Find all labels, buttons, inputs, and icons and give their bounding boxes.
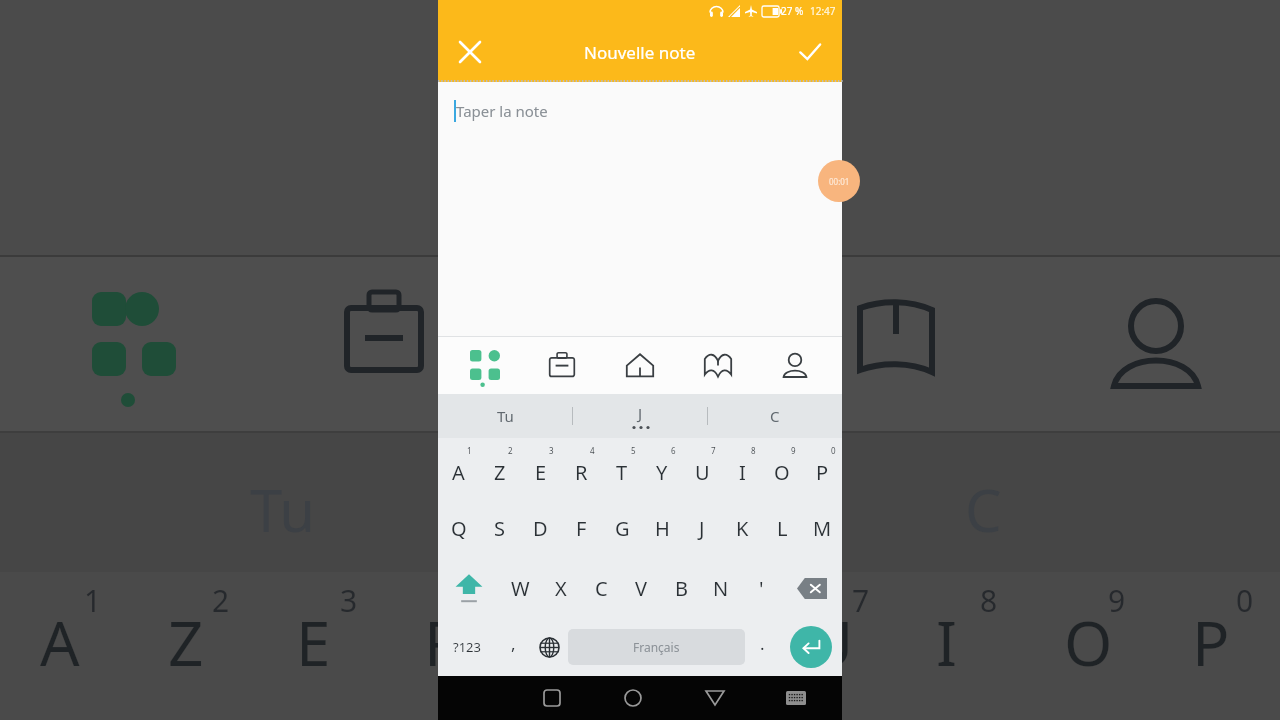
staticText: L — [777, 515, 788, 542]
button[interactable]: Work — [531, 336, 593, 394]
staticText: 8 — [980, 580, 998, 621]
button[interactable]: J — [572, 394, 707, 438]
button[interactable]: K — [722, 498, 762, 558]
button[interactable]: Français — [568, 629, 745, 665]
staticText: I — [739, 459, 746, 486]
button[interactable]: Library — [687, 336, 749, 394]
staticText: ?123 — [453, 638, 481, 656]
button[interactable]: L — [762, 498, 802, 558]
button[interactable]: 0 — [802, 438, 842, 498]
staticText: V — [635, 575, 647, 602]
staticText: O — [1064, 600, 1113, 684]
button[interactable]: X — [541, 558, 581, 618]
staticText: 5 — [596, 580, 614, 621]
staticText: Taper la note — [456, 101, 548, 121]
button[interactable]: Enter — [790, 626, 832, 668]
button[interactable]: 5 — [602, 438, 642, 498]
staticText: 00:01 — [829, 176, 850, 187]
staticText: 1 — [467, 445, 472, 456]
staticText: Q — [451, 515, 467, 542]
staticText: H — [655, 515, 670, 542]
button[interactable]: , — [496, 618, 530, 676]
staticText: C — [965, 470, 1002, 549]
button[interactable]: Home — [613, 678, 653, 718]
button[interactable]: Back — [695, 678, 735, 718]
staticText: F — [576, 515, 587, 542]
staticText: T — [616, 459, 628, 486]
staticText: P — [816, 459, 829, 486]
button[interactable]: 3 — [520, 438, 561, 498]
staticText: E — [296, 600, 331, 684]
button[interactable]: G — [602, 498, 642, 558]
staticText: G — [615, 515, 630, 542]
staticText: O — [774, 459, 790, 486]
button[interactable]: V — [621, 558, 661, 618]
staticText: 9 — [1108, 580, 1126, 621]
staticText: P — [1192, 600, 1230, 684]
staticText: 4 — [468, 580, 486, 621]
button[interactable]: Profile — [764, 336, 826, 394]
button[interactable]: Shift — [438, 558, 500, 618]
staticText: 27 % — [781, 4, 804, 18]
button[interactable]: ?123 — [438, 618, 496, 676]
staticText: C — [770, 406, 780, 426]
button[interactable]: 7 — [682, 438, 722, 498]
staticText: I — [936, 600, 958, 684]
button[interactable]: 8 — [722, 438, 762, 498]
staticText: T — [552, 600, 587, 684]
button[interactable]: 6 — [642, 438, 682, 498]
staticText: J — [638, 403, 643, 423]
staticText: 9 — [791, 445, 796, 456]
staticText: Z — [494, 459, 506, 486]
button[interactable]: Home — [609, 336, 671, 394]
staticText: X — [555, 575, 567, 602]
staticText: 3 — [340, 580, 358, 621]
button[interactable]: Recording timer — [818, 160, 860, 202]
button[interactable]: 1 — [438, 438, 479, 498]
staticText: , — [511, 632, 516, 655]
staticText: Y — [656, 459, 668, 486]
button[interactable]: Keyboard switcher — [776, 678, 816, 718]
button[interactable]: 2 — [479, 438, 520, 498]
staticText: Français — [633, 639, 680, 655]
button[interactable]: W — [500, 558, 541, 618]
button[interactable]: Recents — [532, 678, 572, 718]
button[interactable]: F — [561, 498, 602, 558]
staticText: 3 — [549, 445, 554, 456]
button[interactable]: . — [745, 618, 779, 676]
staticText: 6 — [724, 580, 742, 621]
button[interactable]: 4 — [561, 438, 602, 498]
staticText: E — [535, 459, 547, 486]
staticText: K — [736, 515, 749, 542]
button[interactable]: 9 — [762, 438, 802, 498]
staticText: A — [452, 459, 465, 486]
button[interactable]: Q — [438, 498, 479, 558]
staticText: 7 — [711, 445, 716, 456]
button[interactable]: ' — [741, 558, 781, 618]
button[interactable]: H — [642, 498, 682, 558]
staticText: 5 — [631, 445, 636, 456]
staticText: 0 — [1236, 580, 1254, 621]
button[interactable]: M — [802, 498, 842, 558]
staticText: C — [595, 575, 608, 602]
button[interactable]: Backspace — [781, 558, 842, 618]
button[interactable]: Apps — [454, 336, 516, 394]
button[interactable]: C — [581, 558, 621, 618]
staticText: 8 — [751, 445, 756, 456]
button[interactable]: Close — [448, 30, 492, 74]
button[interactable]: B — [661, 558, 701, 618]
staticText: 7 — [852, 580, 870, 621]
staticText: A — [40, 600, 80, 684]
staticText: Tu — [497, 406, 514, 426]
button[interactable]: Change language — [530, 618, 568, 676]
button[interactable]: Save note — [788, 30, 832, 74]
button[interactable]: S — [479, 498, 520, 558]
button[interactable]: C — [707, 394, 842, 438]
button[interactable]: J — [682, 498, 722, 558]
button[interactable]: Tu — [438, 394, 572, 438]
staticText: U — [808, 600, 854, 684]
staticText: 0 — [831, 445, 836, 456]
button[interactable]: N — [701, 558, 741, 618]
button[interactable]: D — [520, 498, 561, 558]
staticText: R — [424, 600, 463, 684]
